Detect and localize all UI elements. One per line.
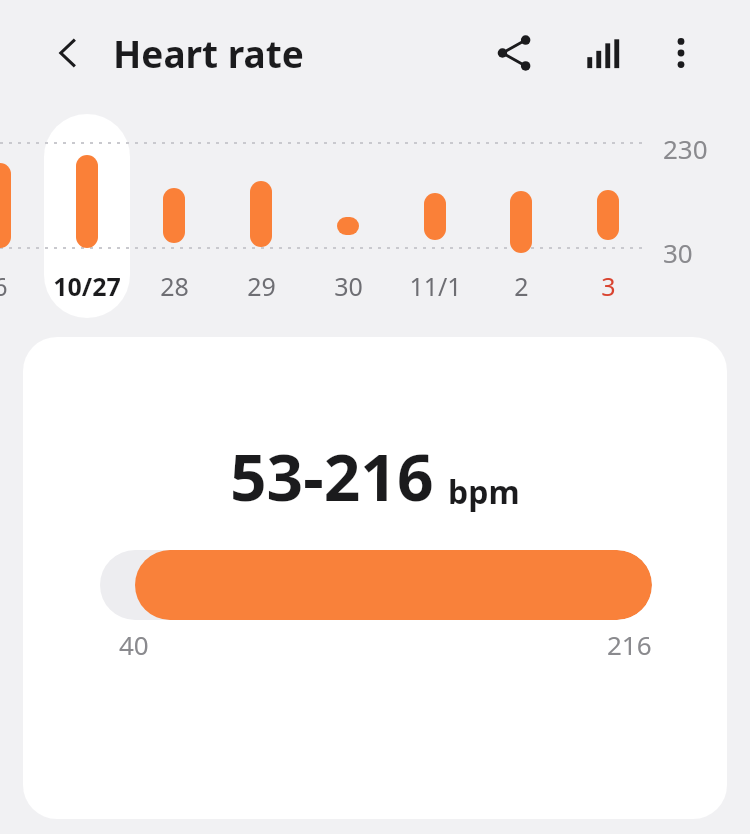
button[interactable]: Back (40, 25, 96, 81)
staticText: Heart rate (113, 28, 304, 78)
staticText: 10/27 (53, 269, 121, 303)
staticText: 30 (334, 269, 363, 303)
button[interactable]: 6 (0, 266, 50, 306)
staticText: 53-216 (230, 433, 434, 520)
staticText: 3 (601, 269, 616, 303)
button[interactable]: 30 (298, 266, 398, 306)
button[interactable]: 10/27 (37, 266, 137, 306)
button[interactable]: Share (484, 22, 546, 84)
button[interactable] (44, 114, 130, 318)
staticText: 29 (247, 269, 276, 303)
button[interactable]: More options (650, 22, 712, 84)
button[interactable]: 11/1 (385, 266, 485, 306)
staticText: 28 (160, 269, 189, 303)
staticText: 2 (514, 269, 529, 303)
button[interactable]: 28 (124, 266, 224, 306)
button[interactable]: 2 (471, 266, 571, 306)
button[interactable]: 53-216 (23, 337, 727, 819)
staticText: 11/1 (409, 269, 462, 303)
button[interactable]: 3 (558, 266, 658, 306)
staticText: 6 (0, 269, 8, 303)
staticText: 216 (607, 627, 652, 662)
staticText: bpm (448, 470, 520, 514)
button[interactable]: 29 (211, 266, 311, 306)
staticText: 230 (663, 131, 708, 166)
staticText: 40 (119, 627, 149, 662)
button[interactable]: Chart view (570, 22, 632, 84)
staticText: 30 (663, 235, 693, 270)
